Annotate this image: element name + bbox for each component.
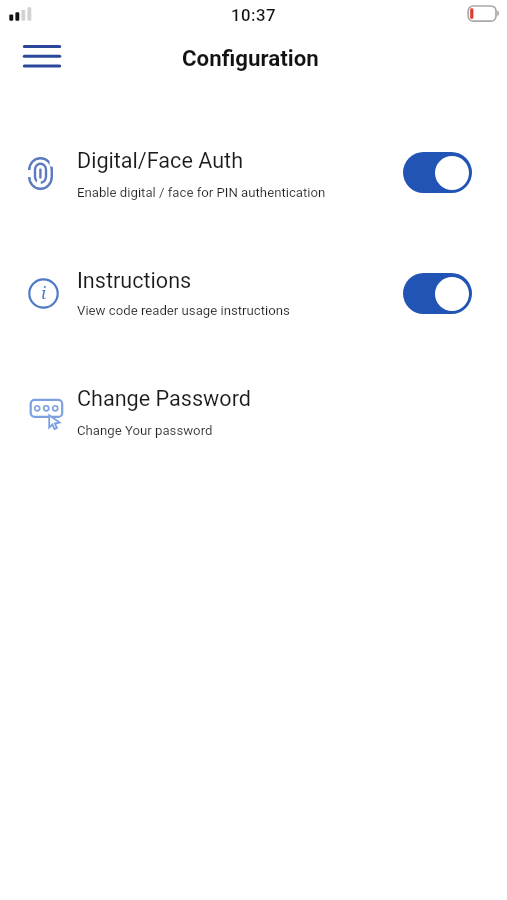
staticText: Enable digital / face for PIN authentica…	[77, 185, 326, 200]
button[interactable]	[16, 39, 68, 73]
staticText: Configuration	[182, 45, 319, 71]
staticText: Change Password	[77, 386, 251, 411]
staticText: i	[41, 281, 47, 304]
staticText: View code reader usage instructions	[77, 303, 290, 318]
staticText: 10:37	[231, 5, 277, 25]
button[interactable]	[403, 152, 472, 193]
button[interactable]: i	[0, 268, 507, 330]
staticText: Digital/Face Auth	[77, 148, 244, 173]
button[interactable]	[403, 273, 472, 314]
button[interactable]: Digital/Face Auth	[0, 148, 507, 210]
button[interactable]: Change Password	[0, 386, 507, 448]
staticText: Instructions	[77, 268, 192, 293]
staticText: Change Your password	[77, 423, 213, 438]
